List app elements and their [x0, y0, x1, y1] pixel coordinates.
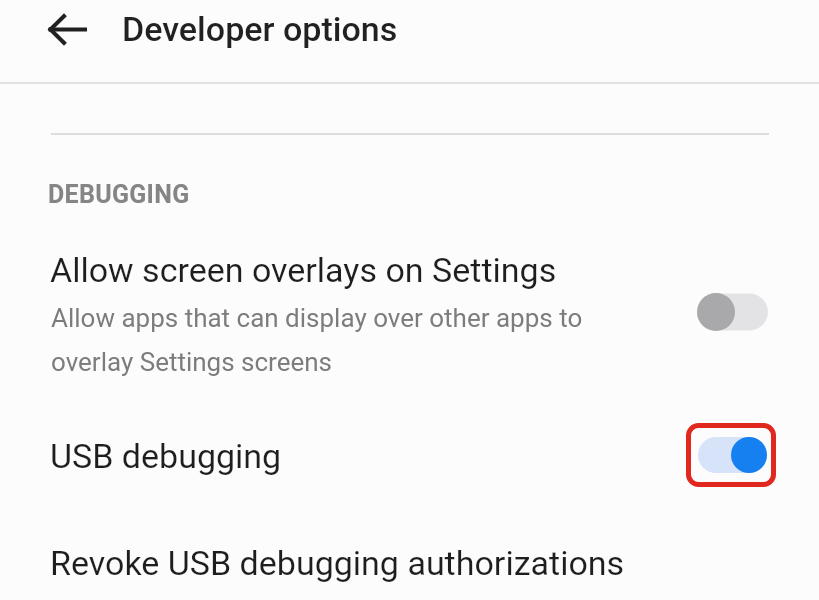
- staticText: overlay Settings screens: [51, 347, 333, 377]
- staticText: Developer options: [122, 9, 398, 49]
- staticText: USB debugging: [50, 436, 282, 476]
- button[interactable]: [698, 437, 767, 473]
- button[interactable]: [697, 293, 768, 331]
- button[interactable]: USB debugging: [0, 412, 819, 507]
- staticText: DEBUGGING: [48, 180, 190, 209]
- button[interactable]: Allow screen overlays on Settings: [0, 240, 819, 395]
- button[interactable]: [40, 2, 96, 58]
- staticText: Allow apps that can display over other a…: [51, 303, 583, 333]
- button[interactable]: Revoke USB debugging authorizations: [0, 527, 819, 600]
- staticText: Revoke USB debugging authorizations: [50, 543, 625, 583]
- staticText: Allow screen overlays on Settings: [50, 250, 557, 290]
